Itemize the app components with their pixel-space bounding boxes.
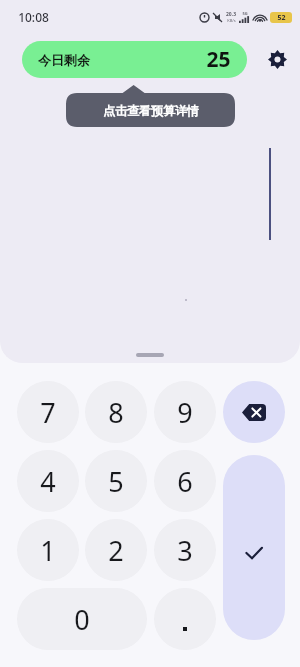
button[interactable]: 0 (17, 588, 147, 650)
button[interactable]: 5 (85, 450, 147, 512)
staticText: 3 (177, 532, 193, 569)
staticText: 5G (242, 11, 248, 16)
staticText: 点击查看预算详情 (103, 103, 199, 118)
staticText: 0 (74, 601, 90, 638)
staticText: KB/s (227, 18, 236, 23)
button[interactable]: Backspace (223, 381, 285, 443)
button[interactable]: 2 (85, 519, 147, 581)
button[interactable]: 6 (154, 450, 216, 512)
button[interactable]: 9 (154, 381, 216, 443)
button[interactable]: 1 (17, 519, 79, 581)
staticText: 今日剩余 (38, 52, 90, 68)
staticText: 25 (206, 45, 231, 74)
staticText: 4 (40, 463, 56, 500)
staticText: 20.3 (226, 11, 236, 18)
staticText: 7 (40, 394, 56, 431)
staticText: 1 (40, 532, 56, 569)
staticText: 52 (277, 13, 286, 23)
staticText: 10:08 (18, 9, 49, 25)
button[interactable]: Confirm (223, 455, 285, 640)
staticText: 2 (108, 532, 124, 569)
button[interactable]: 3 (154, 519, 216, 581)
staticText: 9 (177, 394, 193, 431)
staticText: 6 (177, 463, 193, 500)
button[interactable]: 8 (85, 381, 147, 443)
button[interactable]: Settings (259, 41, 295, 77)
button[interactable]: 7 (17, 381, 79, 443)
staticText: 8 (108, 394, 124, 431)
staticText: 5 (108, 463, 124, 500)
button[interactable]: 今日剩余 (22, 41, 247, 78)
button[interactable] (154, 588, 216, 650)
button[interactable]: 点击查看预算详情 (66, 89, 235, 131)
button[interactable]: 4 (17, 450, 79, 512)
